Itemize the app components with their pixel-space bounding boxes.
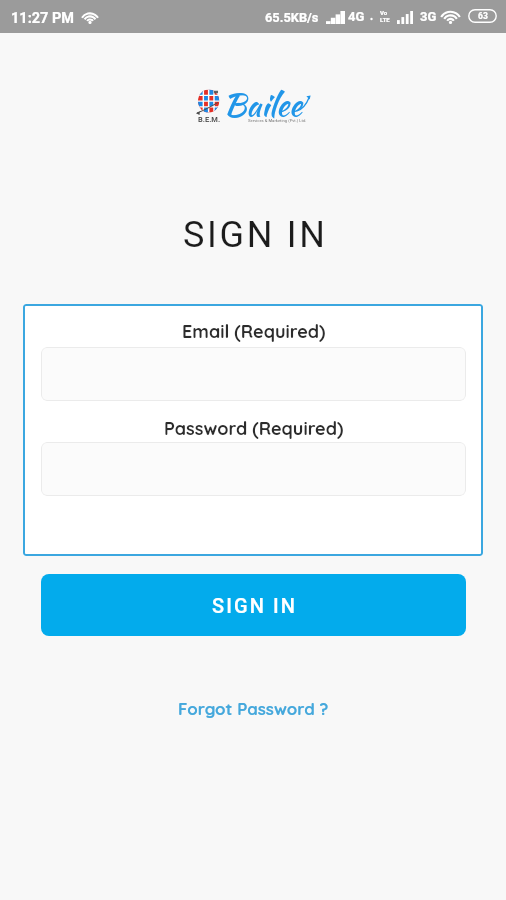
staticText: SIGN IN xyxy=(212,594,298,617)
staticText: Services & Marketing (Pvt.) Ltd. xyxy=(248,118,307,123)
staticText: 63 xyxy=(478,11,488,21)
staticText: Forgot Password ? xyxy=(178,698,329,719)
staticText: 11:27 PM xyxy=(11,10,75,27)
staticText: B.E.M. xyxy=(198,115,221,124)
button[interactable] xyxy=(41,442,466,496)
button[interactable]: SIGN IN xyxy=(41,574,466,636)
staticText: Vo xyxy=(380,9,388,16)
staticText: Bailee xyxy=(223,81,302,127)
staticText: SIGN IN xyxy=(183,214,328,256)
button[interactable] xyxy=(41,347,466,401)
staticText: 3G xyxy=(420,9,437,24)
staticText: Email (Required) xyxy=(182,320,326,343)
staticText: Password (Required) xyxy=(164,417,344,440)
staticText: 65.5KB/s xyxy=(265,10,319,25)
staticText: LTE xyxy=(380,16,390,23)
staticText: 4G xyxy=(348,9,365,24)
button[interactable]: Forgot Password ? xyxy=(164,690,343,727)
